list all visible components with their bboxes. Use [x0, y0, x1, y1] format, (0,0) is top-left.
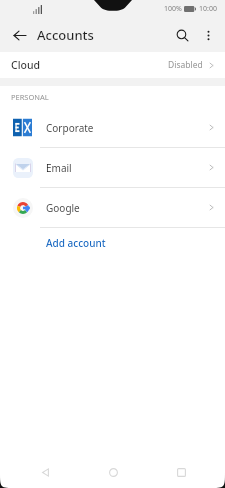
button[interactable]: Home — [91, 457, 135, 488]
button[interactable]: Back — [6, 22, 32, 48]
button[interactable]: Search — [169, 22, 195, 48]
button[interactable]: Add account — [0, 228, 225, 258]
staticText: 100% — [164, 4, 182, 14]
button[interactable]: Cloud — [0, 52, 225, 78]
button[interactable]: Email — [0, 148, 225, 187]
staticText: PERSONAL — [11, 92, 49, 102]
staticText: Email — [46, 161, 72, 175]
staticText: Accounts — [37, 26, 94, 44]
button[interactable]: Google — [0, 188, 225, 227]
staticText: Add account — [46, 236, 106, 250]
button[interactable]: Back — [23, 457, 67, 488]
staticText: 10:00 — [199, 4, 217, 14]
button[interactable]: More options — [195, 22, 221, 48]
button[interactable]: Corporate — [0, 108, 225, 147]
staticText: Disabled — [168, 59, 203, 71]
staticText: Corporate — [46, 121, 94, 135]
staticText: Cloud — [11, 58, 41, 72]
button[interactable]: Recent apps — [159, 457, 203, 488]
staticText: Google — [46, 201, 80, 215]
